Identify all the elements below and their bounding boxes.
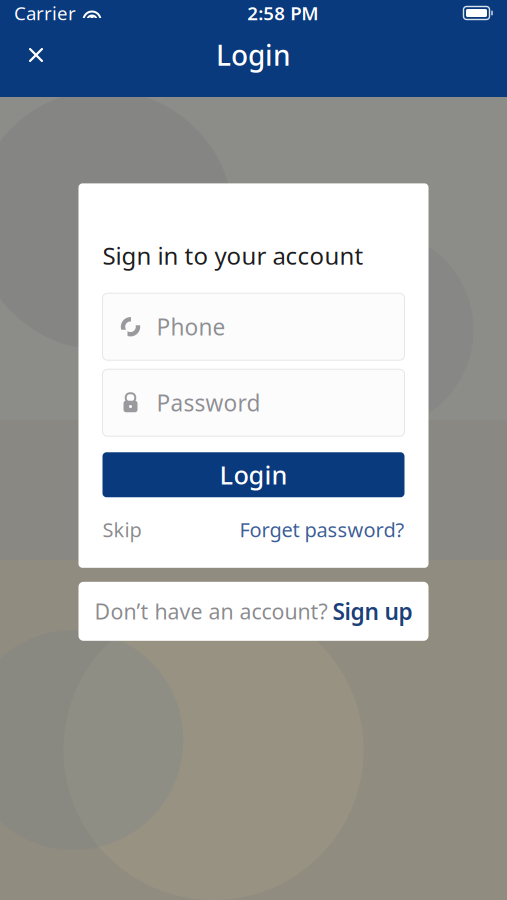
button[interactable]: Forget password? — [239, 516, 404, 543]
button[interactable]: Don’t have an account? — [78, 582, 428, 641]
staticText: Carrier — [14, 1, 76, 25]
staticText: 2:58 PM — [247, 1, 318, 25]
staticText: Phone — [156, 312, 225, 342]
staticText: Login — [219, 458, 287, 491]
staticText: Skip — [102, 516, 141, 543]
staticText: Login — [216, 36, 291, 74]
staticText: Forget password? — [239, 516, 404, 543]
button[interactable]: Skip — [102, 516, 141, 543]
button[interactable]: Login — [102, 452, 404, 497]
staticText: Sign up — [332, 596, 412, 626]
staticText: Sign in to your account — [102, 239, 363, 271]
staticText: Password — [156, 388, 260, 418]
button[interactable]: Close — [14, 33, 58, 77]
staticText: Don’t have an account? — [94, 597, 327, 625]
